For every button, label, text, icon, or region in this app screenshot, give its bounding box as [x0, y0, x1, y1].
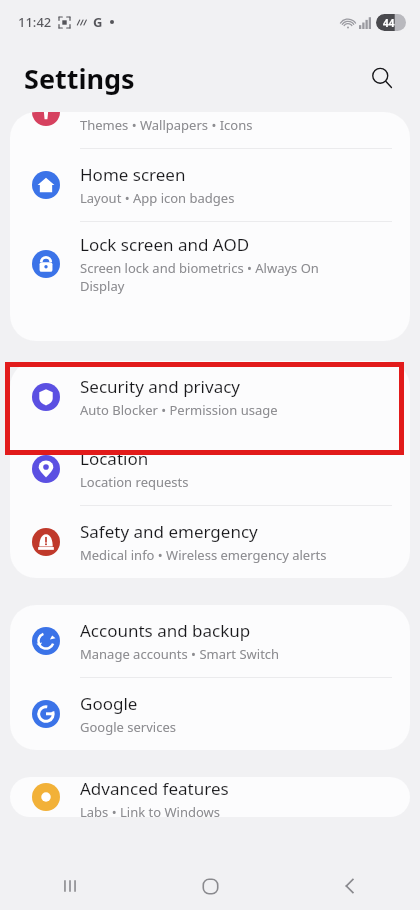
staticText: Location requests — [80, 473, 189, 491]
button[interactable]: Safety and emergency — [10, 506, 410, 578]
staticText: Location — [80, 447, 149, 470]
staticText: Home screen — [80, 163, 186, 186]
staticText: G — [93, 13, 103, 31]
staticText: Settings — [24, 60, 135, 97]
button[interactable]: Advanced features — [10, 777, 410, 817]
staticText: Safety and emergency — [80, 520, 258, 543]
button[interactable]: Accounts and backup — [10, 605, 410, 678]
staticText: Screen lock and biometrics • Always On D… — [80, 259, 319, 295]
staticText: Advanced features — [80, 777, 229, 800]
staticText: Google services — [80, 718, 176, 736]
staticText: Security and privacy — [80, 375, 241, 398]
staticText: Google — [80, 692, 138, 715]
button[interactable]: Back — [280, 862, 420, 910]
staticText: Labs • Link to Windows — [80, 803, 220, 817]
button[interactable]: Search — [362, 58, 402, 98]
button[interactable]: Security and privacy — [10, 361, 410, 433]
staticText: Medical info • Wireless emergency alerts — [80, 546, 327, 564]
button[interactable]: Home — [140, 862, 280, 910]
button[interactable]: Google — [10, 678, 410, 750]
staticText: Lock screen and AOD — [80, 233, 250, 256]
button[interactable]: Themes — [10, 112, 410, 149]
staticText: Themes • Wallpapers • Icons — [80, 116, 253, 134]
staticText: 11:42 — [18, 13, 52, 31]
staticText: Accounts and backup — [80, 619, 251, 642]
button[interactable]: Recents — [0, 862, 140, 910]
staticText: 44 — [383, 16, 395, 30]
staticText: Manage accounts • Smart Switch — [80, 645, 280, 663]
button[interactable]: Location — [10, 433, 410, 506]
staticText: Auto Blocker • Permission usage — [80, 401, 278, 419]
button[interactable]: Lock screen and AOD — [10, 222, 410, 305]
staticText: Layout • App icon badges — [80, 189, 235, 207]
button[interactable]: Home screen — [10, 149, 410, 222]
